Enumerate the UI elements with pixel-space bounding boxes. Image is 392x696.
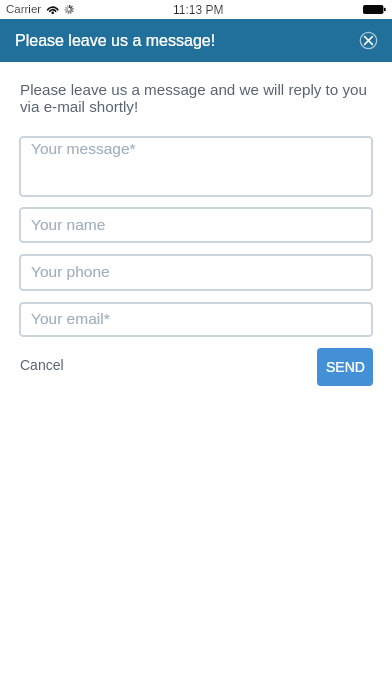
staticText: Your email* — [31, 310, 110, 327]
button[interactable]: Your message* — [19, 136, 373, 197]
button[interactable]: Your email* — [19, 302, 373, 337]
button[interactable]: Close — [357, 29, 380, 52]
staticText: Please leave us a message and we will re… — [20, 81, 374, 115]
staticText: Carrier — [6, 3, 42, 16]
staticText: Your phone — [31, 263, 110, 280]
button[interactable]: Your name — [19, 207, 373, 243]
staticText: Cancel — [20, 357, 64, 373]
staticText: Your message* — [31, 140, 136, 157]
button[interactable]: Your phone — [19, 254, 373, 291]
staticText: SEND — [326, 359, 365, 375]
staticText: 11:13 PM — [173, 3, 224, 16]
button[interactable]: SEND — [317, 348, 373, 386]
button[interactable]: Cancel — [20, 348, 64, 386]
staticText: Your name — [31, 216, 106, 233]
staticText: Please leave us a message! — [15, 32, 216, 50]
